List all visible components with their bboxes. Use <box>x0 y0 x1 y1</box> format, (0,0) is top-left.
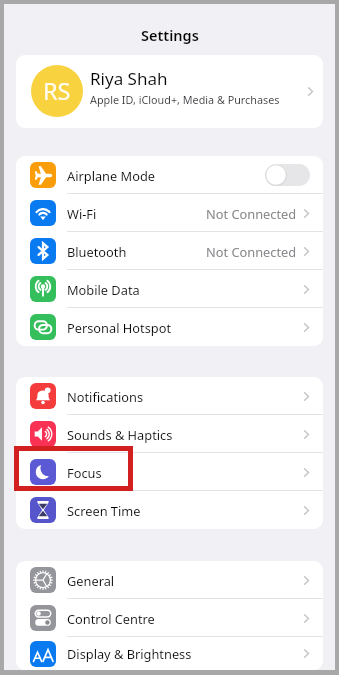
staticText: Bluetooth <box>67 243 127 260</box>
button[interactable]: Screen Time <box>16 491 323 529</box>
button[interactable]: Airplane Mode toggle <box>265 164 310 186</box>
staticText: Apple ID, iCloud+, Media & Purchases <box>90 92 280 107</box>
staticText: Not Connected <box>206 205 297 222</box>
staticText: Screen Time <box>67 502 141 519</box>
staticText: Notifications <box>67 388 144 405</box>
button[interactable]: Personal Hotspot <box>16 308 323 346</box>
button[interactable]: Display & Brightness <box>16 637 323 670</box>
button[interactable]: General <box>16 561 323 599</box>
button[interactable]: Notifications <box>16 377 323 415</box>
staticText: Riya Shah <box>90 67 168 90</box>
staticText: Personal Hotspot <box>67 319 172 336</box>
button[interactable]: Bluetooth <box>16 232 323 270</box>
staticText: Focus <box>67 464 102 481</box>
staticText: Mobile Data <box>67 281 140 298</box>
button[interactable]: Wi-Fi <box>16 194 323 232</box>
staticText: Sounds & Haptics <box>67 426 173 443</box>
button[interactable]: Control Centre <box>16 599 323 637</box>
button[interactable]: Focus <box>16 453 323 491</box>
button[interactable]: Mobile Data <box>16 270 323 308</box>
staticText: Display & Brightness <box>67 645 192 662</box>
staticText: Airplane Mode <box>67 167 156 184</box>
staticText: Settings <box>141 25 199 45</box>
button[interactable]: Sounds & Haptics <box>16 415 323 453</box>
staticText: General <box>67 572 115 589</box>
staticText: Control Centre <box>67 610 155 627</box>
staticText: Not Connected <box>206 243 297 260</box>
button[interactable]: RS <box>16 55 323 128</box>
staticText: Wi-Fi <box>67 205 97 222</box>
staticText: RS <box>43 75 71 107</box>
button[interactable]: Airplane Mode <box>16 156 323 194</box>
